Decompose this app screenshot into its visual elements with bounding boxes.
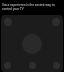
button[interactable] xyxy=(53,62,60,69)
button[interactable] xyxy=(29,62,36,69)
button[interactable] xyxy=(4,62,11,69)
button[interactable] xyxy=(52,18,60,26)
button[interactable] xyxy=(4,18,12,26)
staticText: Voice experience is the easiest way to c… xyxy=(2,3,62,11)
button[interactable] xyxy=(22,34,42,54)
